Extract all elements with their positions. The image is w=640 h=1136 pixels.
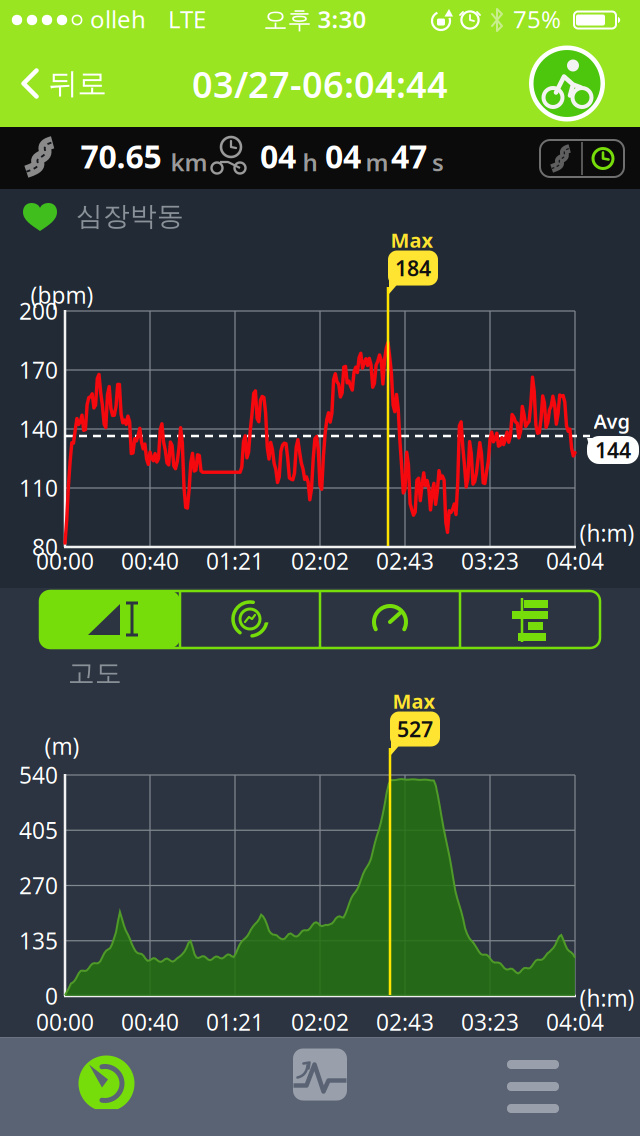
staticText: (m) bbox=[44, 731, 79, 761]
staticText: 04:04 bbox=[546, 546, 604, 576]
staticText: 270 bbox=[19, 870, 58, 900]
button[interactable]: Back bbox=[4, 40, 124, 127]
staticText: 00:00 bbox=[36, 546, 94, 576]
staticText: 135 bbox=[19, 926, 58, 956]
button[interactable]: Dashboard bbox=[0, 1037, 213, 1135]
button[interactable]: Statistics bbox=[460, 591, 600, 648]
button[interactable]: Ride bbox=[529, 45, 605, 121]
staticText: 184 bbox=[395, 254, 431, 282]
staticText: 405 bbox=[19, 815, 58, 845]
staticText: 200 bbox=[19, 296, 58, 326]
staticText: 00:40 bbox=[121, 546, 179, 576]
staticText: 527 bbox=[397, 715, 433, 743]
staticText: Max bbox=[392, 688, 435, 714]
staticText: 540 bbox=[19, 760, 58, 790]
staticText: Max bbox=[390, 227, 433, 253]
staticText: 04 bbox=[325, 135, 361, 177]
staticText: (h:m) bbox=[579, 518, 634, 548]
staticText: 70.65 bbox=[80, 135, 161, 177]
staticText: 170 bbox=[19, 355, 58, 385]
staticText: m bbox=[365, 146, 388, 178]
staticText: s bbox=[432, 146, 444, 178]
staticText: 03:23 bbox=[461, 1007, 519, 1037]
button[interactable]: Toggle distance and time display bbox=[540, 140, 624, 177]
button[interactable]: Gradient bbox=[40, 591, 180, 648]
staticText: Avg bbox=[593, 408, 630, 434]
staticText: 04:04 bbox=[546, 1007, 604, 1037]
staticText: 47 bbox=[391, 135, 427, 177]
staticText: LTE bbox=[168, 3, 206, 35]
staticText: 02:02 bbox=[291, 546, 349, 576]
staticText: 심장박동 bbox=[76, 200, 184, 232]
staticText: 110 bbox=[19, 473, 58, 503]
staticText: 오후 3:30 bbox=[263, 3, 366, 35]
button[interactable]: Cadence bbox=[180, 591, 320, 648]
staticText: 03:23 bbox=[461, 546, 519, 576]
staticText: 00:40 bbox=[121, 1007, 179, 1037]
staticText: 02:02 bbox=[291, 1007, 349, 1037]
staticText: 뒤로 bbox=[48, 65, 106, 101]
staticText: km bbox=[170, 146, 207, 178]
staticText: 01:21 bbox=[206, 546, 264, 576]
staticText: 0 bbox=[45, 981, 58, 1011]
staticText: 고도 bbox=[68, 657, 122, 689]
staticText: olleh bbox=[90, 3, 146, 35]
staticText: 144 bbox=[595, 436, 631, 464]
staticText: 80 bbox=[32, 532, 58, 562]
staticText: 140 bbox=[19, 414, 58, 444]
staticText: h bbox=[302, 146, 317, 178]
staticText: 00:00 bbox=[36, 1007, 94, 1037]
staticText: (h:m) bbox=[579, 983, 634, 1013]
button[interactable]: Activity bbox=[213, 1037, 426, 1135]
staticText: 02:43 bbox=[376, 1007, 434, 1037]
staticText: 01:21 bbox=[206, 1007, 264, 1037]
button[interactable]: Speed bbox=[320, 591, 460, 648]
staticText: 04 bbox=[260, 135, 296, 177]
staticText: 02:43 bbox=[376, 546, 434, 576]
staticText: 75% bbox=[513, 3, 561, 35]
staticText: 03/27-06:04:44 bbox=[192, 60, 448, 108]
staticText: (bpm) bbox=[30, 280, 93, 310]
button[interactable]: Menu bbox=[426, 1037, 640, 1135]
